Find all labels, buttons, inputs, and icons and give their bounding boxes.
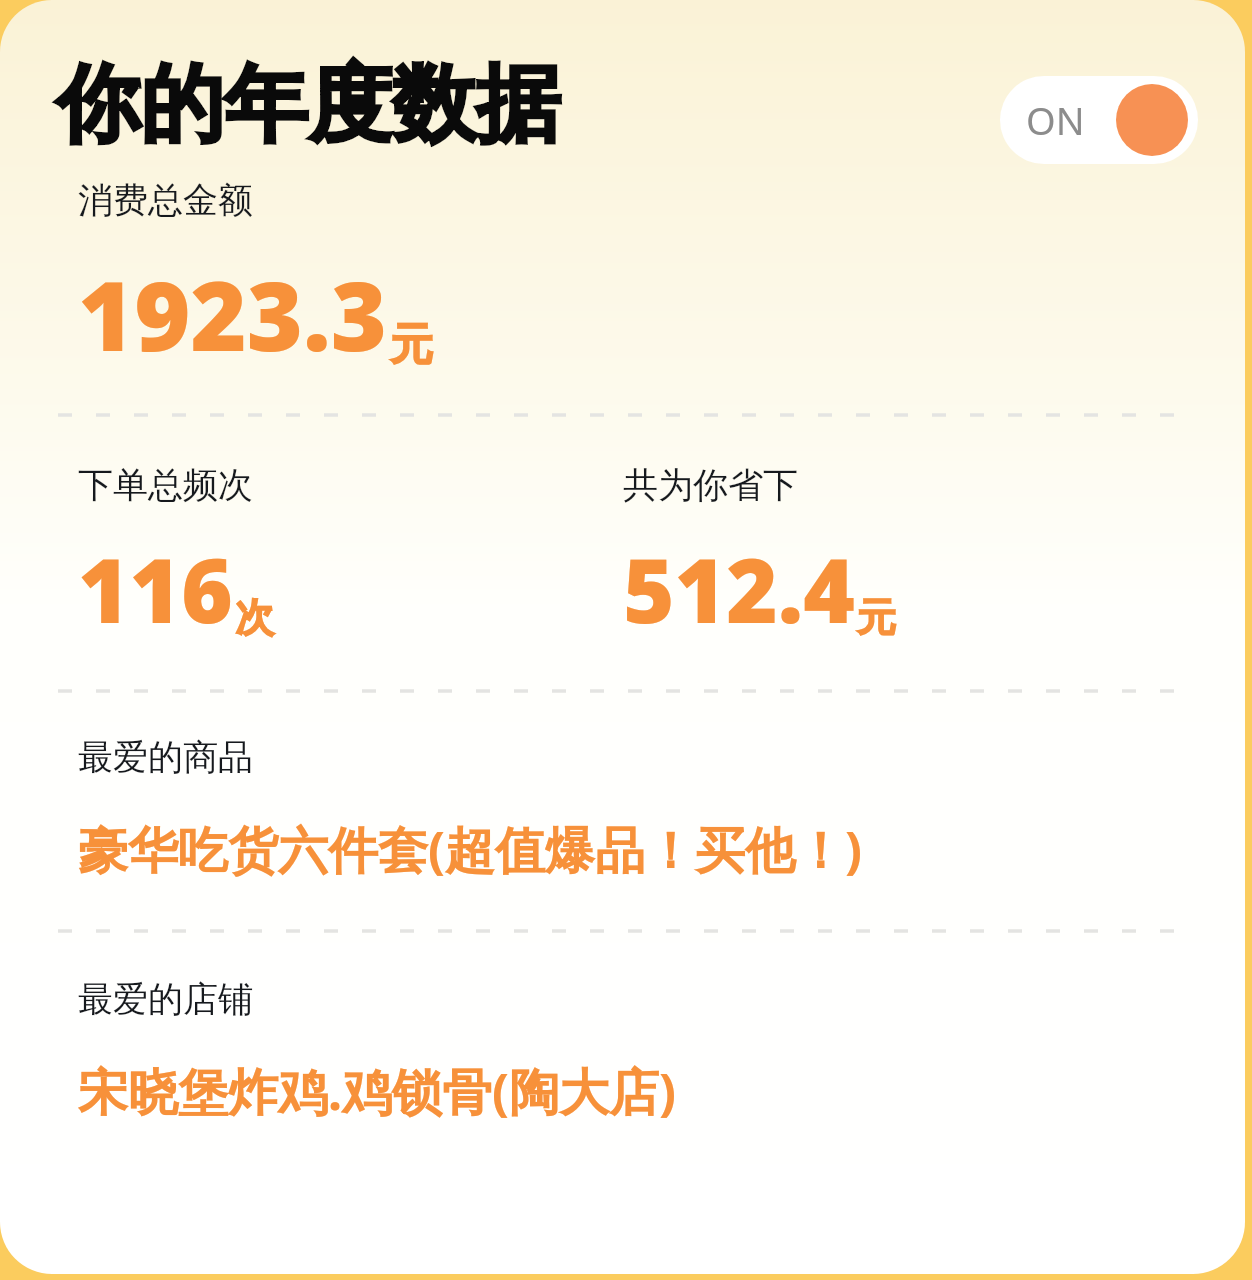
staticText: 元 [390, 318, 433, 372]
staticText: 512.4 [623, 529, 855, 649]
button[interactable]: Toggle on [1000, 76, 1198, 164]
staticText: ON [1026, 94, 1085, 146]
staticText: 共为你省下 [623, 463, 798, 507]
staticText: 1923.3 [78, 248, 388, 379]
button[interactable]: 最爱的商品 [0, 735, 1252, 883]
staticText: 116 [78, 529, 233, 649]
staticText: 宋晓堡炸鸡.鸡锁骨(陶大店) [78, 1057, 676, 1125]
staticText: 消费总金额 [78, 178, 253, 222]
staticText: 豪华吃货六件套(超值爆品！买他！) [78, 815, 862, 883]
staticText: 你的年度数据 [56, 52, 560, 158]
button[interactable]: 最爱的店铺 [0, 977, 1252, 1125]
staticText: 元 [857, 593, 896, 642]
staticText: 次 [235, 593, 274, 642]
staticText: 最爱的商品 [78, 735, 253, 779]
staticText: 最爱的店铺 [78, 977, 253, 1021]
staticText: 下单总频次 [78, 463, 253, 507]
